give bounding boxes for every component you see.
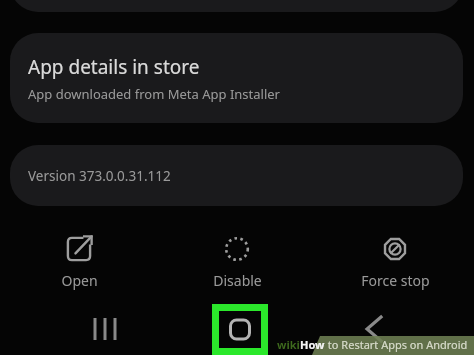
staticText: App downloaded from Meta App Installer [28,85,280,103]
button[interactable]: Disable [158,228,316,290]
button[interactable]: Recent apps [77,303,133,355]
staticText: How [300,337,325,352]
staticText: Open [61,271,98,290]
button[interactable]: Open [0,228,158,290]
button[interactable] [10,0,463,12]
staticText: Disable [213,271,262,290]
staticText: wiki [277,337,300,352]
button[interactable]: Home [212,304,268,355]
button[interactable]: Back [344,303,396,355]
staticText: to Restart Apps on Android [325,337,468,352]
button[interactable]: Version 373.0.0.31.112 [10,145,463,206]
button[interactable]: App details in store [10,33,463,123]
staticText: Force stop [361,271,430,290]
staticText: Version 373.0.0.31.112 [28,167,171,185]
button[interactable]: Force stop [316,228,474,290]
staticText: App details in store [28,54,200,80]
